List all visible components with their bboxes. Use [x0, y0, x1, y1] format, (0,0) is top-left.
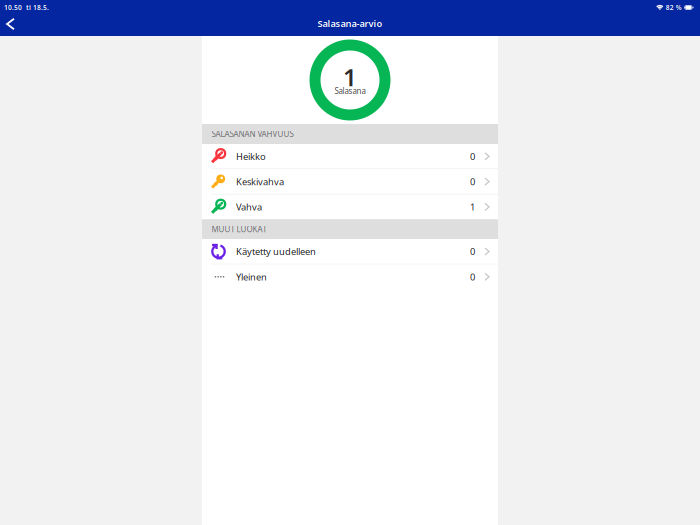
button[interactable]: Yleinen [202, 264, 498, 289]
staticText: Salasana [334, 86, 365, 96]
button[interactable]: Heikko [202, 144, 498, 169]
staticText: ti 18.5. [26, 3, 49, 12]
staticText: MUUT LUOKAT [211, 224, 266, 234]
button[interactable]: Back [0, 15, 25, 36]
staticText: 10.50 [4, 3, 22, 12]
staticText: 82 % [666, 3, 682, 12]
staticText: 1 [470, 201, 475, 213]
staticText: Vahva [236, 201, 262, 213]
staticText: SALASANAN VAHVUUS [211, 129, 293, 139]
staticText: Yleinen [236, 271, 267, 283]
staticText: 0 [470, 175, 475, 188]
button[interactable]: Keskivahva [202, 169, 498, 194]
staticText: 0 [470, 271, 475, 283]
staticText: Heikko [236, 150, 266, 162]
staticText: Keskivahva [236, 175, 284, 188]
button[interactable]: Vahva [202, 195, 498, 219]
staticText: Käytetty uudelleen [236, 245, 316, 258]
staticText: 1 [343, 61, 357, 93]
staticText: Salasana-arvio [317, 17, 382, 30]
button[interactable]: Käytetty uudelleen [202, 239, 498, 264]
staticText: 0 [470, 150, 475, 162]
staticText: 0 [470, 245, 475, 258]
